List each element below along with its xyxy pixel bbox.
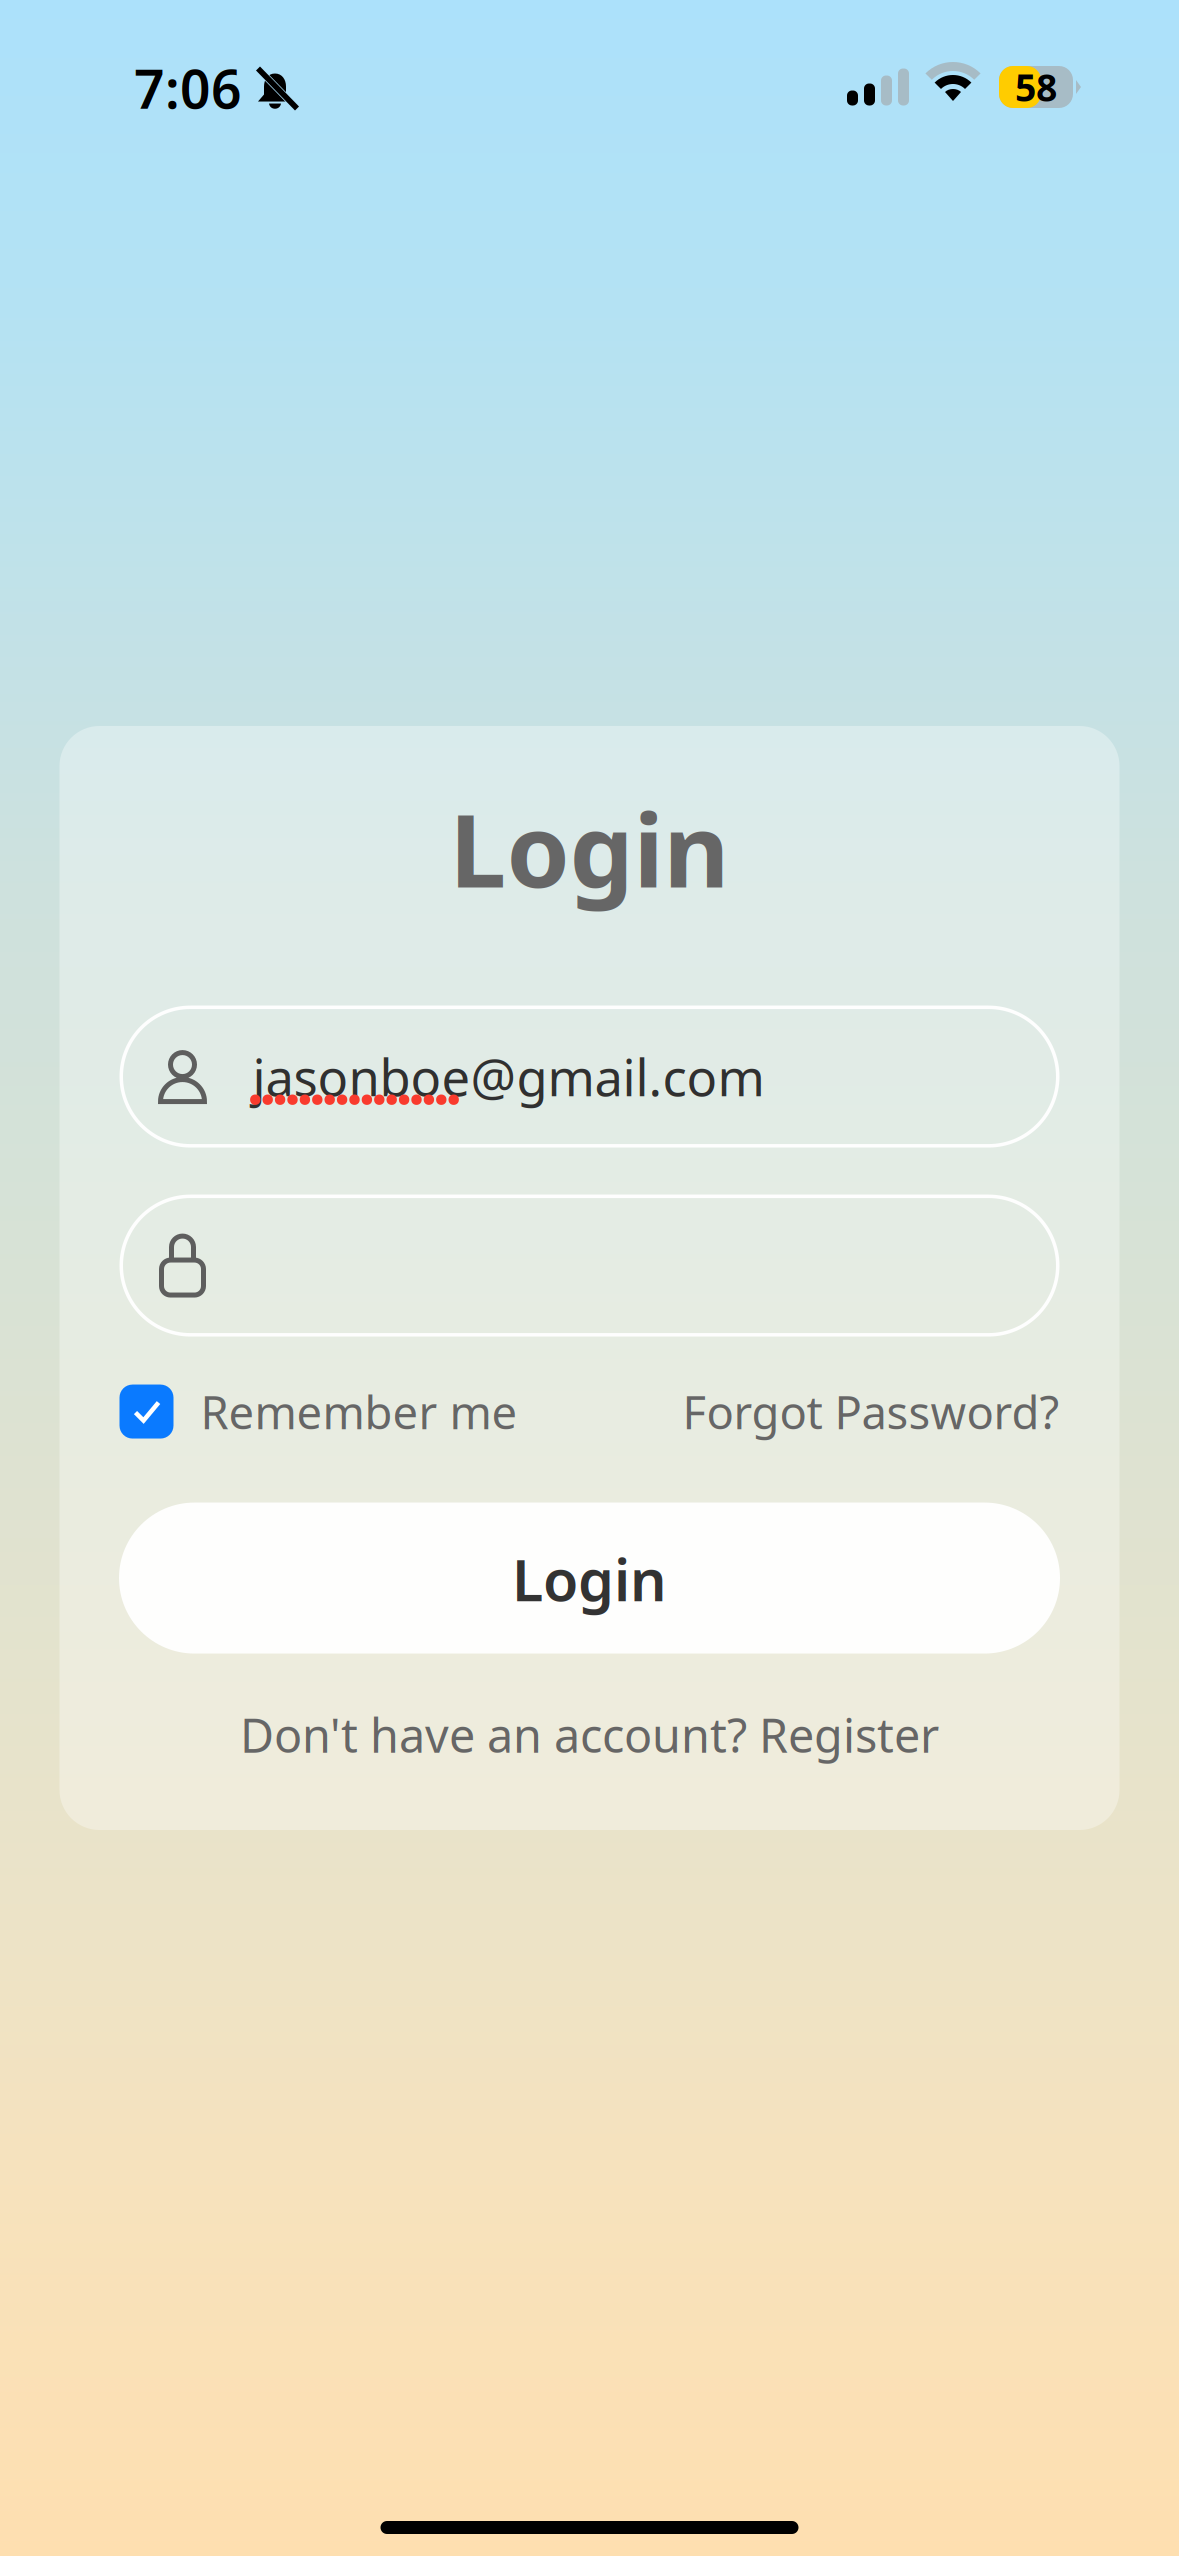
button[interactable]: Remember me bbox=[119, 1381, 517, 1442]
staticText: 58 bbox=[1015, 62, 1057, 112]
staticText: jasonboe@gmail.com bbox=[252, 1043, 764, 1110]
staticText: Login bbox=[512, 1541, 667, 1617]
button[interactable]: Forgot Password? bbox=[682, 1381, 1059, 1442]
staticText: Don't have an account? Register bbox=[240, 1704, 939, 1766]
button[interactable]: Don't have an account? Register bbox=[240, 1704, 939, 1766]
staticText: Remember me bbox=[200, 1381, 517, 1442]
staticText: Forgot Password? bbox=[682, 1381, 1059, 1442]
staticText: 7:06 bbox=[134, 53, 242, 123]
button[interactable]: Login bbox=[119, 1503, 1060, 1654]
staticText: Login bbox=[449, 781, 729, 916]
